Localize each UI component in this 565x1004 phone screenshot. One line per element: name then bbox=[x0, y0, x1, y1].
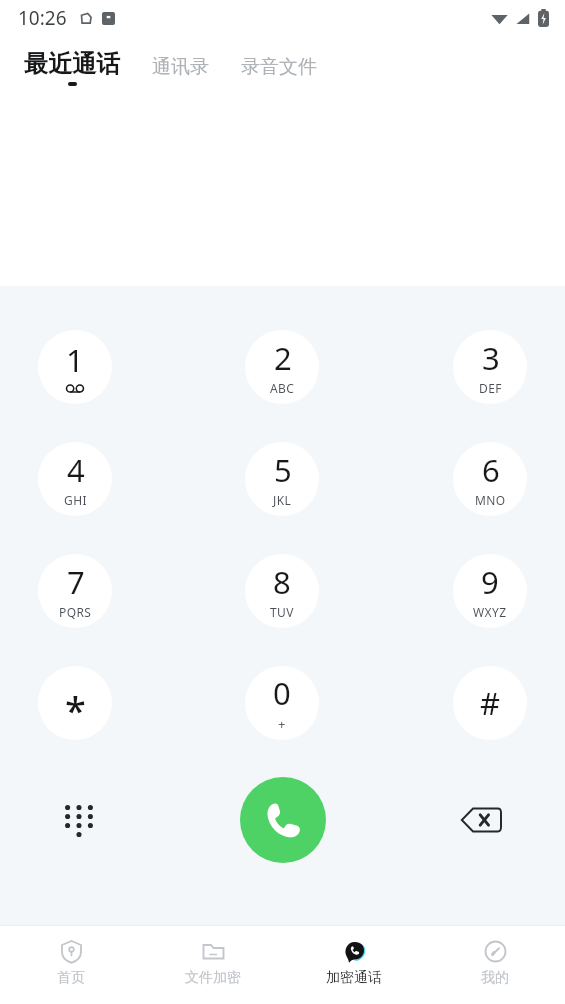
staticText: TUV bbox=[270, 604, 294, 620]
button[interactable]: 我的 bbox=[424, 926, 565, 1004]
button[interactable]: 首页 bbox=[0, 926, 142, 1004]
staticText: 录音文件 bbox=[241, 55, 317, 79]
button[interactable]: Key 0 bbox=[245, 666, 319, 740]
staticText: 1 bbox=[66, 339, 84, 381]
staticText: 首页 bbox=[57, 969, 85, 987]
staticText: # bbox=[480, 682, 501, 724]
staticText: 5 bbox=[274, 449, 292, 491]
staticText: 0 bbox=[273, 672, 291, 714]
staticText: PQRS bbox=[59, 604, 92, 620]
staticText: 6 bbox=[482, 449, 500, 491]
staticText: JKL bbox=[273, 492, 292, 508]
button[interactable]: Key 3 bbox=[453, 330, 527, 404]
button[interactable]: 通讯录 bbox=[146, 49, 215, 85]
staticText: 最近通话 bbox=[24, 49, 120, 79]
button[interactable]: 文件加密 bbox=[142, 926, 283, 1004]
button[interactable]: 录音文件 bbox=[235, 49, 323, 85]
staticText: MNO bbox=[475, 492, 506, 508]
button[interactable]: Key # bbox=[453, 666, 527, 740]
staticText: ABC bbox=[270, 380, 295, 396]
button[interactable]: 最近通话 bbox=[20, 47, 124, 88]
staticText: 3 bbox=[482, 337, 500, 379]
button[interactable]: Hide keypad bbox=[45, 786, 113, 854]
button[interactable]: Delete bbox=[450, 789, 512, 851]
staticText: DEF bbox=[479, 380, 502, 396]
button[interactable]: Call bbox=[240, 777, 326, 863]
button[interactable]: Key 6 bbox=[453, 442, 527, 516]
staticText: 文件加密 bbox=[185, 969, 241, 987]
staticText: 7 bbox=[67, 561, 85, 603]
button[interactable]: Key 4 bbox=[38, 442, 112, 516]
staticText: 10:26 bbox=[18, 5, 67, 31]
button[interactable]: Key 5 bbox=[245, 442, 319, 516]
staticText: WXYZ bbox=[473, 604, 507, 620]
staticText: 9 bbox=[481, 561, 499, 603]
button[interactable]: Key 2 bbox=[245, 330, 319, 404]
staticText: GHI bbox=[64, 492, 87, 508]
button[interactable]: 加密通话 bbox=[283, 926, 424, 1004]
staticText: 2 bbox=[274, 337, 292, 379]
staticText: * bbox=[65, 684, 86, 736]
button[interactable]: Key 7 bbox=[38, 554, 112, 628]
staticText: + bbox=[278, 715, 286, 733]
button[interactable]: Key 9 bbox=[453, 554, 527, 628]
staticText: 4 bbox=[67, 449, 85, 491]
button[interactable]: Key 8 bbox=[245, 554, 319, 628]
staticText: 通讯录 bbox=[152, 55, 209, 79]
button[interactable]: Key * bbox=[38, 666, 112, 740]
staticText: 加密通话 bbox=[326, 969, 382, 987]
staticText: 8 bbox=[273, 561, 291, 603]
button[interactable]: Key 1 bbox=[38, 330, 112, 404]
staticText: 我的 bbox=[481, 969, 509, 987]
